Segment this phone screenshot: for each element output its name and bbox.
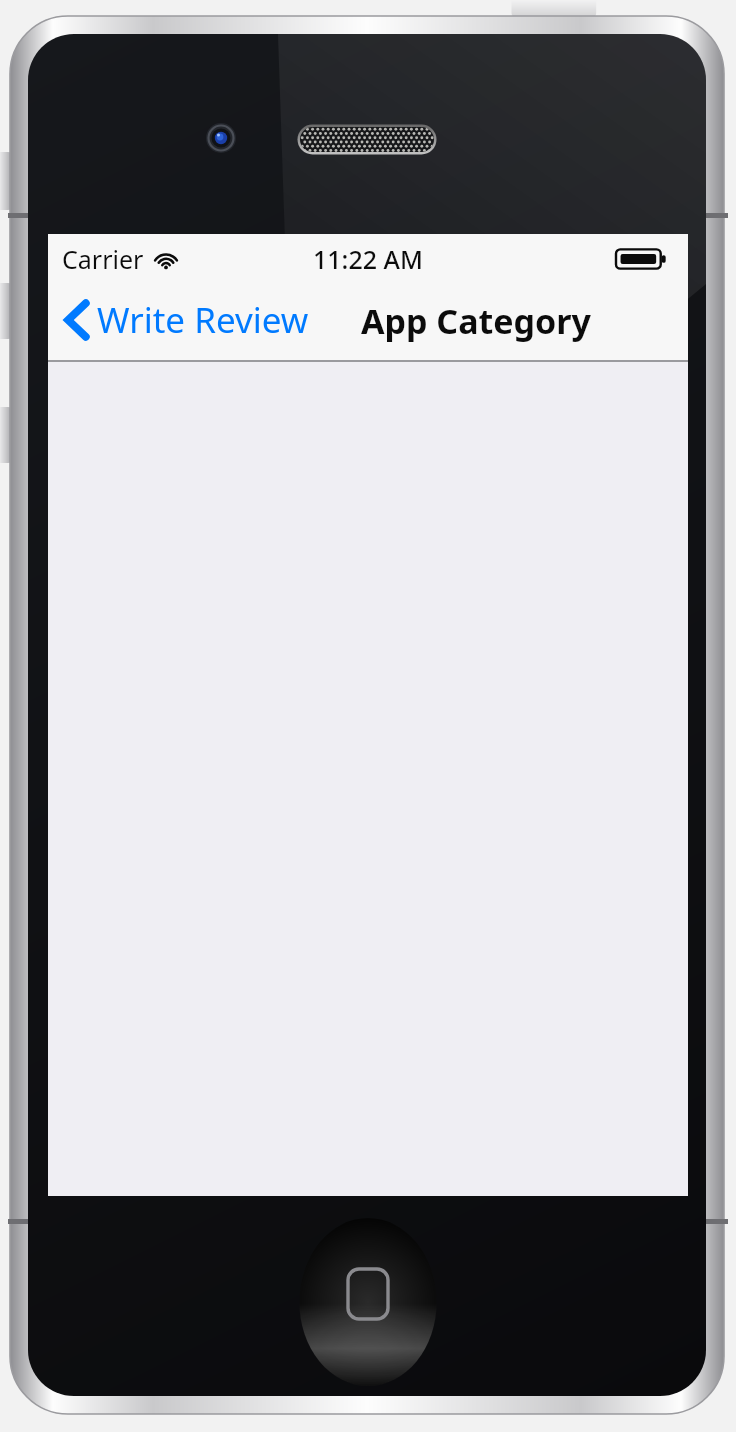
- staticText: 11:22 AM: [313, 242, 423, 276]
- staticText: Carrier: [62, 242, 144, 276]
- staticText: App Category: [361, 298, 591, 344]
- staticText: Write Review: [97, 296, 309, 344]
- button[interactable]: Write Review: [58, 294, 315, 346]
